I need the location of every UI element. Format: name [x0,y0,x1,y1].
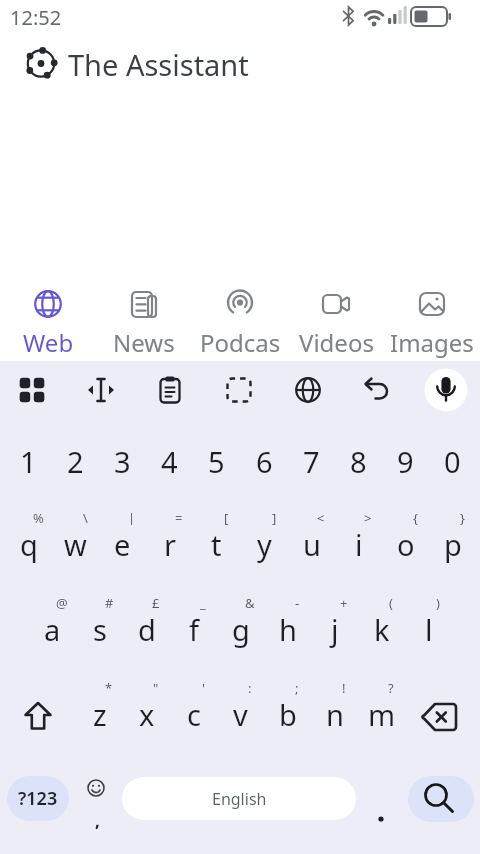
staticText: e [114,525,131,564]
button[interactable]: English [122,777,356,820]
button[interactable] [146,366,194,414]
staticText: c [187,695,201,734]
staticText: } [460,509,465,525]
button[interactable]: 7 [288,420,335,502]
button[interactable]: 0 [429,420,476,502]
button[interactable]: 6 [241,420,288,502]
button[interactable]: ! [311,672,358,757]
button[interactable]: ' [170,672,217,757]
button[interactable]: & [217,587,264,672]
button[interactable]: 2 [52,420,99,502]
button[interactable] [410,683,472,747]
staticText: * [105,679,113,695]
staticText: w [64,525,87,564]
button[interactable]: 1 [5,420,52,502]
staticText: v [233,695,248,734]
staticText: f [189,610,199,649]
button[interactable]: Images [384,284,480,358]
staticText: l [425,610,433,649]
button[interactable]: 9 [382,420,429,502]
button[interactable]: { [382,502,429,587]
button[interactable]: News [96,284,192,358]
staticText: > [364,509,372,525]
staticText: , [94,801,101,829]
staticText: [ [224,509,229,525]
staticText: 4 [161,442,178,481]
button[interactable] [215,366,263,414]
staticText: j [331,610,339,649]
button[interactable]: £ [123,587,170,672]
staticText: 3 [114,442,131,481]
staticText: 6 [256,442,273,481]
staticText: ( [389,594,393,610]
button[interactable] [408,776,474,822]
button[interactable]: Videos [288,284,384,358]
button[interactable] [8,683,68,747]
staticText: @ [56,594,68,610]
button[interactable]: = [146,502,193,587]
button[interactable]: * [76,672,123,757]
staticText: # [105,594,114,610]
button[interactable]: " [123,672,170,757]
staticText: a [44,610,61,649]
staticText: u [303,525,321,564]
staticText: o [397,525,415,564]
staticText: d [138,610,156,649]
staticText: Podcas [200,326,281,359]
staticText: ; [295,679,299,695]
button[interactable]: 5 [193,420,240,502]
button[interactable] [77,366,125,414]
button[interactable]: - [264,587,311,672]
button[interactable]: _ [170,587,217,672]
button[interactable]: ?123 [7,776,69,821]
button[interactable]: ( [358,587,405,672]
staticText: ! [342,679,346,695]
button[interactable]: 3 [99,420,146,502]
button[interactable]: ; [264,672,311,757]
staticText: The Assistant [68,45,249,84]
button[interactable]: | [99,502,146,587]
staticText: £ [152,594,160,610]
staticText: English [212,788,267,810]
staticText: Web [23,326,74,359]
button[interactable] [284,366,332,414]
button[interactable] [422,366,470,414]
staticText: z [93,695,107,734]
staticText: 9 [397,442,414,481]
button[interactable]: [ [193,502,240,587]
button[interactable]: ) [405,587,452,672]
button[interactable]: : [217,672,264,757]
staticText: " [153,679,159,695]
button[interactable]: ? [358,672,405,757]
staticText: { [413,509,418,525]
staticText: = [175,509,183,525]
button[interactable]: # [76,587,123,672]
button[interactable]: % [5,502,52,587]
button[interactable]: @ [29,587,76,672]
staticText: \ [83,509,88,525]
button[interactable]: Web [0,284,96,358]
staticText: - [295,594,300,610]
staticText: ) [436,594,440,610]
button[interactable]: \ [52,502,99,587]
staticText: 5 [208,442,225,481]
button[interactable] [8,366,56,414]
button[interactable]: Podcas [192,284,288,358]
button[interactable]: > [335,502,382,587]
button[interactable]: , [76,773,118,825]
staticText: 0 [444,442,461,481]
button[interactable]: 8 [335,420,382,502]
staticText: & [245,594,255,610]
button[interactable] [353,366,401,414]
button[interactable]: ] [241,502,288,587]
staticText: + [340,594,348,610]
button[interactable]: < [288,502,335,587]
button[interactable] [362,781,402,821]
staticText: News [113,326,175,359]
staticText: i [355,525,363,564]
button[interactable]: 4 [146,420,193,502]
button[interactable]: The Assistant [16,40,276,88]
button[interactable]: + [311,587,358,672]
staticText: h [279,610,297,649]
button[interactable]: } [429,502,476,587]
